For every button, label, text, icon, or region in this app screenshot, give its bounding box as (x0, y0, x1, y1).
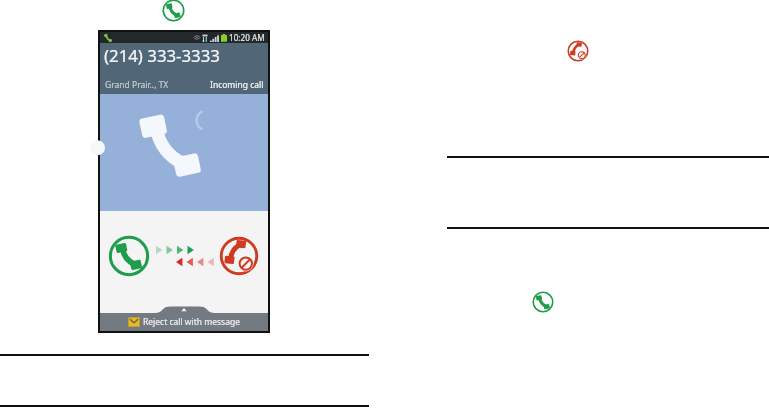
button[interactable]: Call (162, 0, 185, 22)
button[interactable]: Answer (108, 235, 150, 277)
staticText: Incoming call (210, 79, 264, 91)
button[interactable]: Answer call (532, 291, 554, 313)
button[interactable]: Reject (219, 236, 259, 276)
staticText: 10:20 AM (229, 32, 265, 43)
staticText: Reject call with message (143, 316, 240, 328)
button[interactable]: Reject call with message (100, 313, 268, 331)
button[interactable]: Reject call (567, 40, 589, 62)
staticText: Grand Prair.., TX (105, 79, 169, 91)
staticText: (214) 333-3333 (104, 44, 220, 67)
